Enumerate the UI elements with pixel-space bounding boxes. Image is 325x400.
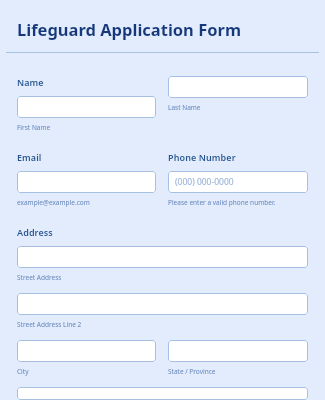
staticText: example@example.com	[17, 198, 90, 207]
staticText: Street Address	[17, 273, 62, 282]
button[interactable]	[17, 171, 156, 193]
staticText: Phone Number	[168, 151, 236, 163]
staticText: Lifeguard Application Form	[17, 18, 241, 40]
staticText: First Name	[17, 123, 51, 132]
button[interactable]: (000) 000-0000	[168, 171, 308, 193]
staticText: City	[17, 367, 29, 376]
staticText: Street Address Line 2	[17, 320, 82, 329]
button[interactable]	[168, 340, 308, 362]
button[interactable]	[17, 246, 308, 268]
staticText: Name	[17, 76, 44, 88]
staticText: Please enter a valid phone number.	[168, 198, 276, 207]
staticText: Email	[17, 151, 42, 163]
staticText: (000) 000-0000	[175, 176, 234, 188]
staticText: State / Province	[168, 367, 216, 376]
button[interactable]	[17, 293, 308, 315]
button[interactable]	[17, 387, 308, 400]
staticText: Last Name	[168, 103, 201, 112]
button[interactable]	[168, 76, 308, 98]
button[interactable]	[17, 96, 156, 118]
button[interactable]	[17, 340, 156, 362]
staticText: Address	[17, 226, 53, 238]
